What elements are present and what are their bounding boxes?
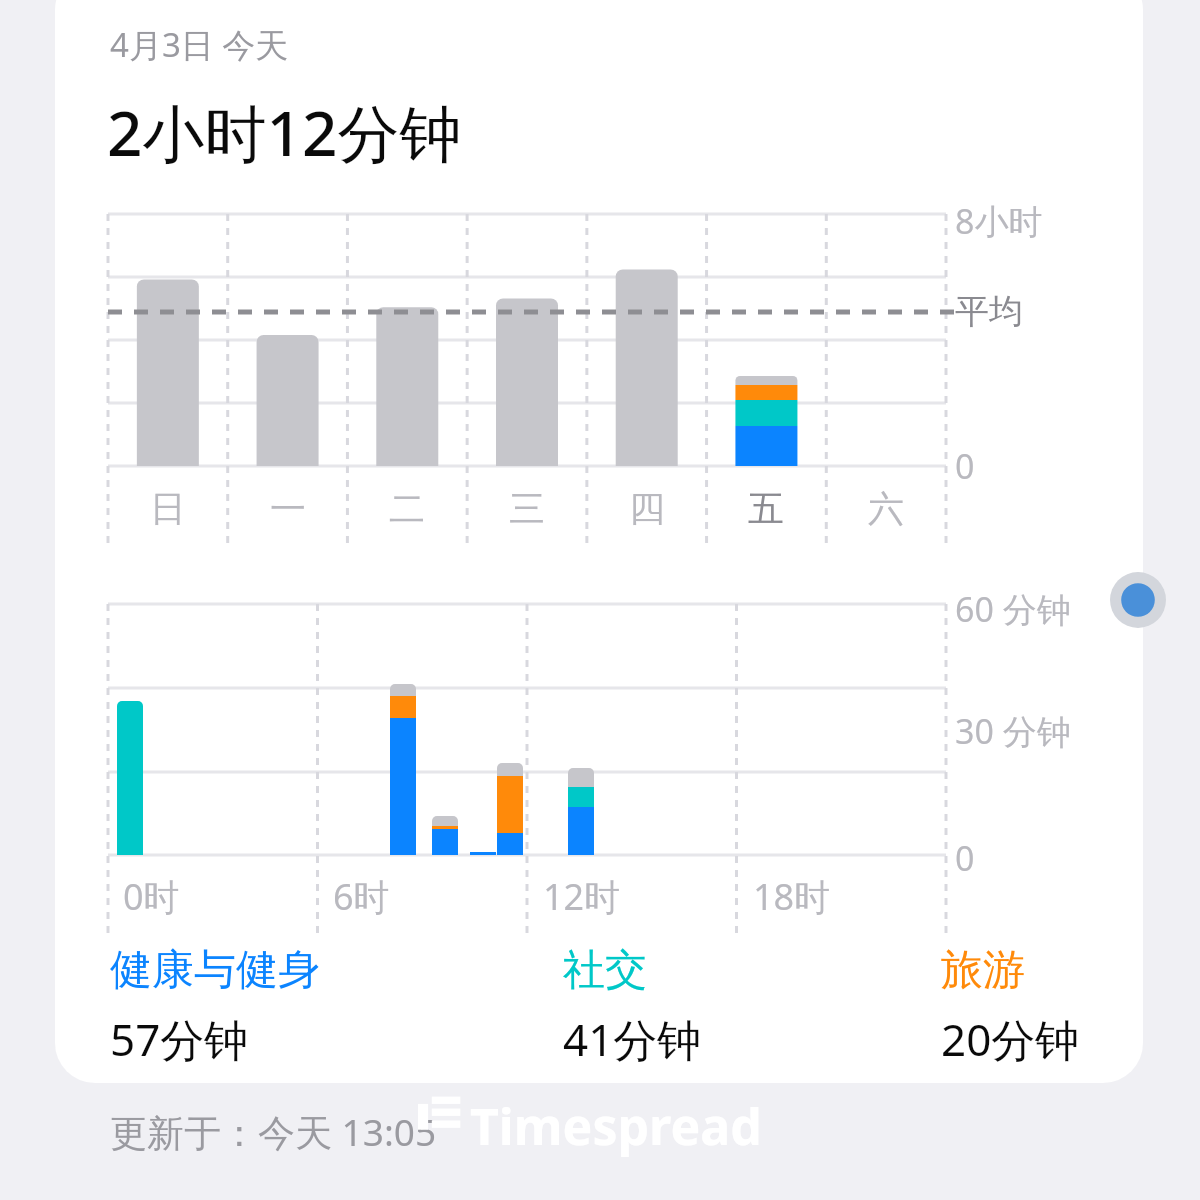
staticText: 旅游	[941, 944, 1025, 997]
staticText: 0	[955, 835, 975, 881]
staticText: 8小时	[955, 198, 1043, 244]
staticText: 日	[138, 486, 198, 536]
staticText: 41分钟	[563, 1009, 702, 1069]
button[interactable]: 社交	[563, 944, 702, 1069]
button[interactable]	[55, 0, 1143, 1083]
staticText: 社交	[563, 944, 647, 997]
staticText: 20分钟	[941, 1009, 1080, 1069]
staticText: 4月3日 今天	[110, 22, 289, 67]
staticText: 60 分钟	[955, 586, 1071, 632]
staticText: 二	[377, 486, 437, 536]
staticText: 30 分钟	[955, 708, 1071, 754]
staticText: 健康与健身	[110, 944, 320, 997]
staticText: 六	[856, 486, 916, 536]
staticText: 6时	[333, 872, 390, 921]
staticText: 0	[955, 443, 975, 489]
staticText: 平均	[955, 290, 1023, 333]
staticText: 57分钟	[110, 1009, 249, 1069]
staticText: 四	[617, 486, 677, 536]
staticText: 一	[258, 486, 318, 536]
staticText: 0时	[123, 872, 180, 921]
staticText: 12时	[543, 872, 621, 921]
staticText: 更新于：今天 13:05	[110, 1106, 437, 1157]
button[interactable]: 健康与健身	[110, 944, 320, 1069]
staticText: 2小时12分钟	[107, 90, 462, 175]
button[interactable]: Page indicator	[1110, 572, 1166, 628]
staticText: 五	[736, 486, 796, 536]
button[interactable]: 旅游	[941, 944, 1080, 1069]
staticText: Timespread	[470, 1092, 762, 1160]
staticText: 18时	[753, 872, 831, 921]
staticText: 三	[497, 486, 557, 536]
